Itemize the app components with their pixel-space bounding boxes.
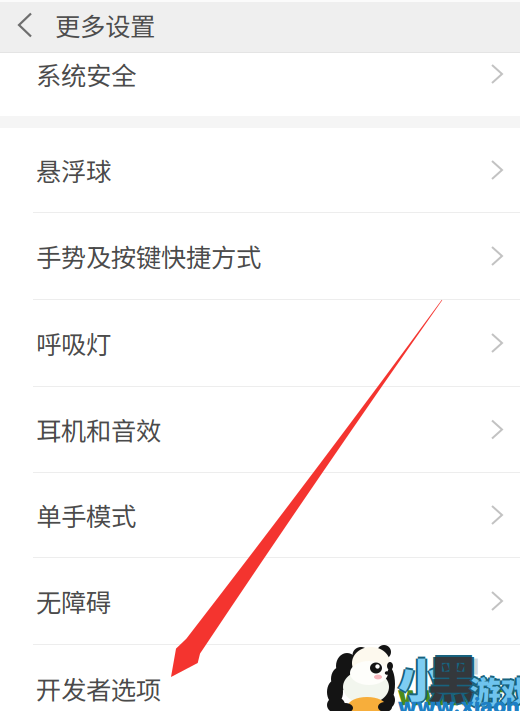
staticText: 黑 [443, 645, 483, 703]
staticText: 手势及按键快捷方式 [36, 238, 261, 274]
button[interactable]: 悬浮球 [0, 128, 520, 213]
staticText: 悬浮球 [36, 152, 111, 188]
button[interactable]: 系统安全 [0, 32, 520, 116]
staticText: 开发者选项 [36, 670, 161, 707]
staticText: 黑 [428, 638, 479, 711]
button[interactable]: 开发者选项 [0, 645, 520, 711]
button[interactable]: Back [0, 2, 56, 52]
staticText: 黑 [428, 642, 479, 711]
staticText: 小 [400, 644, 447, 711]
staticText: 游戏 [472, 668, 520, 711]
button[interactable]: 手势及按键快捷方式 [0, 213, 520, 300]
staticText: 小 [396, 644, 443, 711]
staticText: 系统安全 [36, 56, 136, 92]
staticText: 游戏 [470, 666, 520, 710]
staticText: 黑 [430, 640, 481, 711]
staticText: 无障碍 [36, 583, 111, 619]
staticText: 游戏 [470, 670, 520, 711]
button[interactable]: 耳机和音效 [0, 387, 520, 473]
staticText: www.922.com [398, 678, 520, 711]
staticText: 小 [398, 646, 445, 711]
staticText: 更多设置 [55, 7, 155, 43]
staticText: 游戏 [468, 668, 520, 711]
staticText: 呼吸灯 [36, 325, 111, 361]
button[interactable]: 单手模式 [0, 473, 520, 558]
staticText: 单手模式 [36, 497, 136, 533]
staticText: 耳机和音效 [36, 411, 161, 448]
staticText: www.xiaohei.com [398, 693, 520, 711]
staticText: 游戏 [470, 668, 520, 711]
staticText: 小 [398, 644, 445, 711]
staticText: 黑 [428, 640, 479, 711]
staticText: 小 [398, 642, 445, 710]
staticText: 黑 [426, 640, 477, 711]
button[interactable]: 无障碍 [0, 558, 520, 645]
button[interactable]: 呼吸灯 [0, 300, 520, 387]
